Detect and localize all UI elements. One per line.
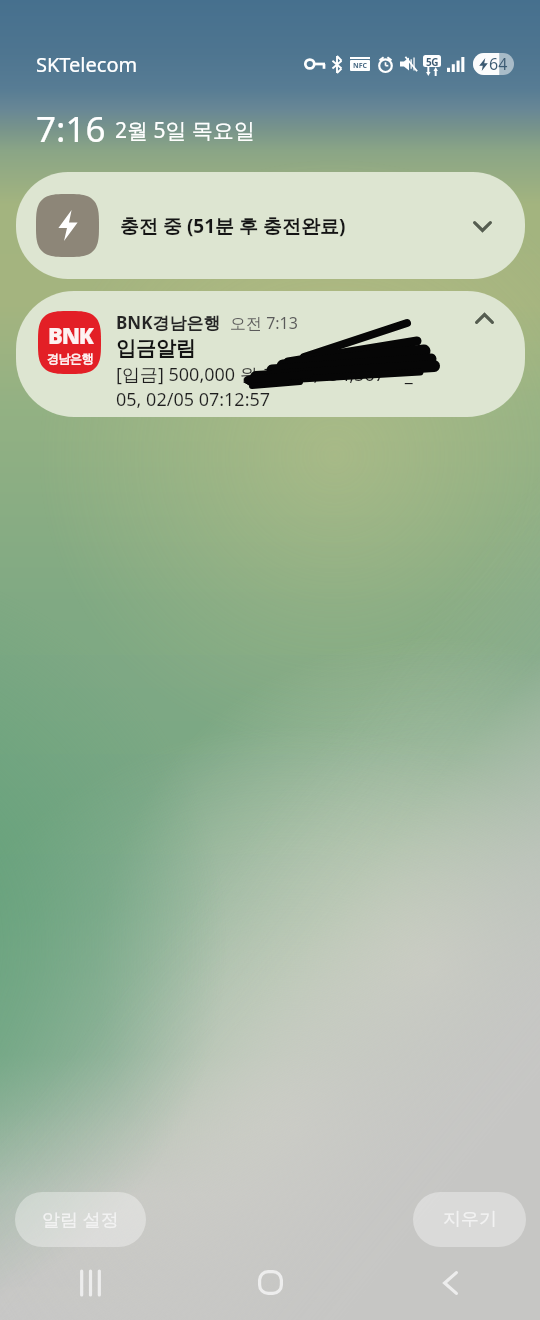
staticText: 알림 설정 — [42, 1207, 119, 1232]
staticText: NFC — [353, 61, 368, 71]
staticText: 64 — [489, 53, 508, 75]
button[interactable]: Recent apps — [0, 1249, 180, 1320]
staticText: 2월 5일 목요일 — [115, 116, 255, 145]
button[interactable]: 알림 설정 — [15, 1192, 146, 1247]
staticText: 오전 7:13 — [230, 312, 298, 334]
staticText: 경남은행 — [47, 351, 93, 366]
staticText: BNK — [48, 320, 93, 350]
button[interactable]: Collapse notification — [467, 301, 501, 335]
staticText: [입금] 500,000 원 잔액 1,234,567**_ — [116, 362, 413, 387]
button[interactable]: Home — [180, 1249, 360, 1320]
button[interactable]: 충전 중 (51분 후 충전완료) — [16, 172, 525, 279]
staticText: BNK경남은행 — [116, 311, 221, 334]
button[interactable]: Expand notification — [465, 209, 499, 243]
staticText: 입금알림 — [116, 336, 196, 361]
staticText: 충전 중 (51분 후 충전완료) — [120, 213, 346, 239]
button[interactable]: Back — [360, 1249, 540, 1320]
staticText: 05, 02/05 07:12:57 — [116, 387, 271, 412]
button[interactable]: 지우기 — [413, 1192, 526, 1247]
button[interactable]: BNK — [16, 291, 525, 417]
staticText: 5G — [426, 55, 438, 67]
staticText: SKTelecom — [36, 51, 138, 78]
staticText: 지우기 — [443, 1208, 497, 1231]
staticText: 7:16 — [36, 105, 106, 147]
